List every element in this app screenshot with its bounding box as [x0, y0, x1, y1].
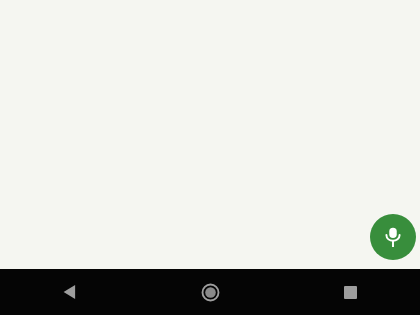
- button[interactable]: Home: [140, 269, 280, 315]
- button[interactable]: Voice search: [370, 214, 416, 260]
- button[interactable]: Recent apps: [280, 269, 420, 315]
- button[interactable]: Back: [0, 269, 140, 315]
